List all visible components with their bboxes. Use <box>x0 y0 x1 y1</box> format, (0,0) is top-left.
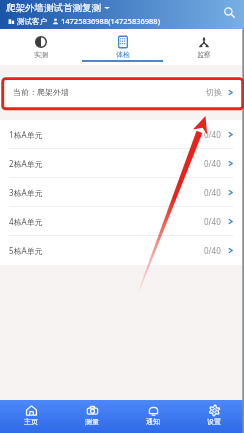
staticText: 体检 <box>116 50 130 59</box>
button[interactable]: 主页 <box>0 400 61 433</box>
staticText: 测试客户 <box>17 17 47 26</box>
staticText: 通知 <box>146 417 160 426</box>
staticText: 5栋A单元 <box>9 245 43 256</box>
staticText: 2栋A单元 <box>9 158 43 169</box>
staticText: 0/40 <box>204 129 221 140</box>
button[interactable]: 通知 <box>122 400 183 433</box>
button[interactable]: 体检 <box>82 29 163 65</box>
button[interactable]: 设置 <box>183 400 244 433</box>
staticText: 0/40 <box>204 216 221 227</box>
staticText: 1栋A单元 <box>9 129 43 140</box>
staticText: 测量 <box>85 417 99 426</box>
button[interactable]: 测量 <box>61 400 122 433</box>
staticText: 0/40 <box>204 245 221 256</box>
staticText: 3栋A单元 <box>9 187 43 198</box>
button[interactable]: 当前：爬架外墙 <box>0 76 244 108</box>
staticText: 主页 <box>24 417 38 426</box>
staticText: 设置 <box>207 417 221 426</box>
staticText: 4栋A单元 <box>9 216 43 227</box>
staticText: 14725836988(14725836988) <box>61 16 160 26</box>
button[interactable]: 1栋A单元 <box>0 120 244 149</box>
staticText: 0/40 <box>204 158 221 169</box>
staticText: 0/40 <box>204 187 221 198</box>
staticText: 当前：爬架外墙 <box>13 87 69 97</box>
button[interactable]: 实测 <box>0 29 82 65</box>
button[interactable]: 3栋A单元 <box>0 178 244 207</box>
button[interactable]: 2栋A单元 <box>0 149 244 178</box>
button[interactable]: 监察 <box>163 29 244 65</box>
staticText: 实测 <box>34 50 48 59</box>
staticText: 监察 <box>197 50 211 59</box>
button[interactable]: 5栋A单元 <box>0 236 244 265</box>
staticText: 爬架外墙测试首测复测 <box>6 2 101 14</box>
staticText: 切换 <box>206 87 222 97</box>
button[interactable]: 4栋A单元 <box>0 207 244 236</box>
button[interactable]: Search <box>221 4 238 21</box>
